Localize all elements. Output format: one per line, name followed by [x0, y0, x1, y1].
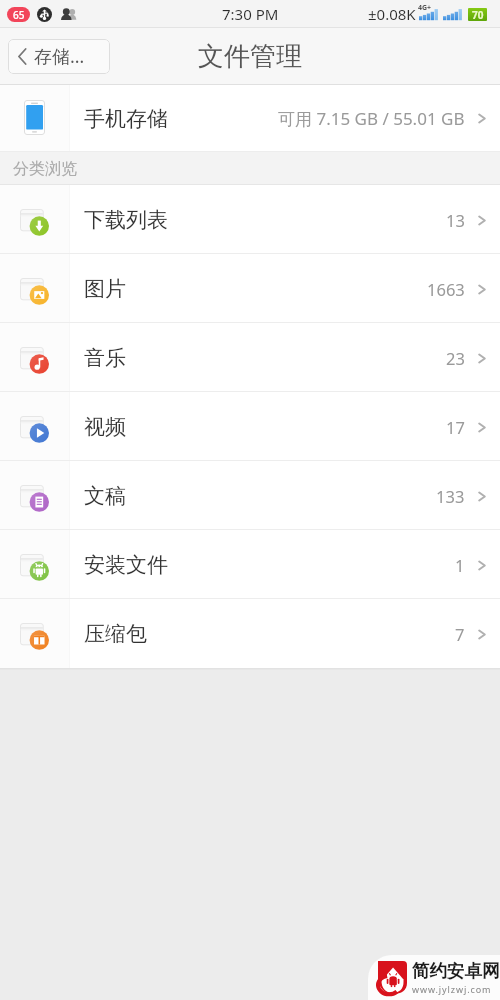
staticText: 存储…	[34, 44, 85, 69]
staticText: www.jylzwj.com	[412, 983, 492, 995]
button[interactable]: 安装文件	[0, 530, 500, 599]
staticText: 图片	[84, 276, 126, 302]
staticText: 23	[446, 347, 465, 369]
button[interactable]: 下载列表	[0, 185, 500, 254]
staticText: 压缩包	[84, 621, 147, 647]
staticText: 13	[446, 209, 465, 231]
staticText: 7	[455, 623, 465, 645]
button[interactable]: 存储…	[8, 39, 110, 74]
button[interactable]: 图片	[0, 254, 500, 323]
button[interactable]: 音乐	[0, 323, 500, 392]
staticText: 4G+	[418, 3, 432, 13]
staticText: 文件管理	[198, 40, 302, 73]
button[interactable]: 视频	[0, 392, 500, 461]
staticText: 70	[472, 8, 484, 21]
staticText: 简约安卓网	[412, 960, 500, 982]
staticText: 视频	[84, 414, 126, 440]
staticText: 音乐	[84, 345, 126, 371]
button[interactable]: 手机存储	[0, 85, 500, 152]
staticText: 7:30 PM	[222, 4, 279, 24]
button[interactable]: 压缩包	[0, 599, 500, 668]
staticText: 安装文件	[84, 552, 168, 578]
staticText: 65	[13, 8, 25, 22]
staticText: 分类浏览	[13, 159, 77, 179]
staticText: 17	[446, 416, 465, 438]
staticText: 133	[436, 485, 465, 507]
staticText: 1663	[427, 278, 465, 300]
staticText: 可用 7.15 GB / 55.01 GB	[278, 107, 465, 130]
staticText: 1	[455, 554, 465, 576]
staticText: 手机存储	[84, 106, 168, 132]
staticText: 下载列表	[84, 207, 168, 233]
button[interactable]: 文稿	[0, 461, 500, 530]
staticText: ±0.08K	[368, 4, 416, 24]
staticText: 文稿	[84, 483, 126, 509]
